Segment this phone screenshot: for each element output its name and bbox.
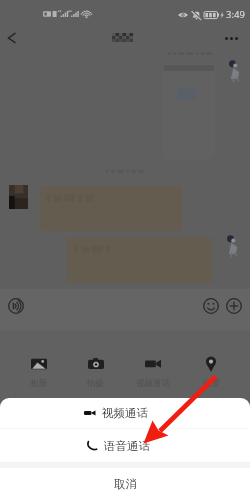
staticText: 位置 bbox=[203, 378, 220, 389]
button[interactable]: Voice call bbox=[0, 429, 250, 462]
button[interactable]: More functions bbox=[226, 298, 242, 314]
button[interactable]: Location bbox=[182, 356, 240, 389]
staticText: 取消 bbox=[114, 477, 137, 491]
button[interactable]: Back bbox=[1, 27, 23, 49]
staticText: 视频通话 bbox=[102, 406, 148, 420]
staticText: 拍摄 bbox=[87, 378, 104, 389]
staticText: 视频通话 bbox=[136, 378, 170, 389]
button[interactable]: Video call bbox=[0, 398, 250, 428]
staticText: 语音通话 bbox=[104, 439, 150, 453]
button[interactable]: Video call bbox=[124, 356, 182, 389]
button[interactable]: Emoji bbox=[203, 298, 219, 314]
button[interactable]: 取消 bbox=[0, 468, 250, 500]
staticText: 3:49 bbox=[226, 8, 245, 21]
button[interactable]: Camera bbox=[67, 356, 124, 389]
button[interactable]: Voice input bbox=[8, 298, 24, 314]
button[interactable]: More options bbox=[218, 27, 244, 49]
button[interactable]: Album bbox=[10, 356, 67, 389]
staticText: 相册 bbox=[30, 378, 47, 389]
